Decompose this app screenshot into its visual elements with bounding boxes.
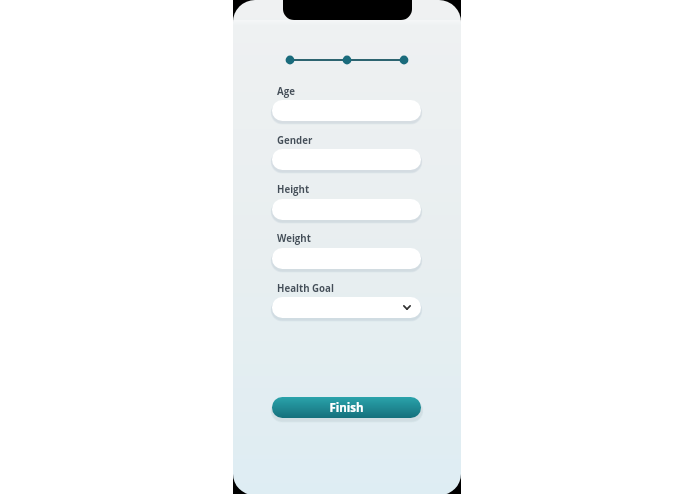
button[interactable] — [272, 149, 421, 170]
button[interactable]: Finish — [272, 397, 421, 418]
staticText: Finish — [329, 400, 364, 416]
button[interactable]: Open health goal options — [272, 297, 421, 318]
button[interactable] — [272, 248, 421, 269]
button[interactable] — [272, 199, 421, 220]
staticText: Weight — [277, 232, 311, 245]
other: Step 3 of 3 — [272, 52, 421, 68]
other: Open health goal options — [403, 305, 411, 310]
button[interactable] — [272, 100, 421, 121]
staticText: Gender — [277, 134, 313, 147]
staticText: Health Goal — [277, 282, 334, 295]
staticText: Age — [277, 85, 295, 98]
staticText: Height — [277, 183, 310, 196]
